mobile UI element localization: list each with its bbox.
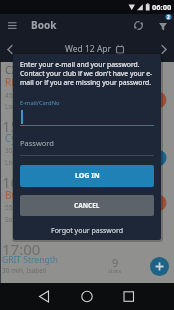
button[interactable] [124,283,151,310]
staticText: Louise [5,102,25,111]
staticText: Password [20,138,54,148]
staticText: Wed 12 Apr [65,43,112,55]
staticText: Forgot your password [51,226,124,236]
staticText: Cycle 30 [5,131,44,145]
staticText: 55 min, Eva [5,203,40,212]
staticText: CANCEL [74,201,100,210]
staticText: 9 [112,255,119,270]
staticText: Enter your e-mail and your password. Con… [20,60,154,87]
staticText: 45 min, Sara [5,91,43,100]
button[interactable]: LOG IN [20,165,154,187]
staticText: E-mail/CardNo [20,99,60,107]
button[interactable] [5,18,19,32]
staticText: Book [31,18,57,32]
staticText: 06:00 [152,2,172,12]
button[interactable]: Wed 12 Apr [65,43,124,55]
button[interactable] [20,104,154,126]
staticText: BODYPUMP [5,188,61,202]
button[interactable] [23,283,50,310]
staticText: Lisa [5,158,17,167]
button[interactable]: CANCEL [20,195,154,216]
button[interactable] [150,257,169,276]
staticText: 30 min, Lena [5,146,45,155]
staticText: CXWORX [5,63,47,77]
staticText: 17:00 [2,239,41,259]
staticText: 15:00 [2,116,41,136]
button[interactable] [20,138,154,156]
button[interactable] [74,283,101,310]
staticText: LOG IN [75,171,100,181]
button[interactable]: 2 [153,16,171,34]
button[interactable]: 17:00 [0,239,174,283]
staticText: 16:00 [2,172,41,192]
staticText: GRIT Strength [2,254,58,266]
staticText: Sofia [5,215,21,224]
button[interactable]: Forgot your password [20,224,154,238]
staticText: RPM 45 [5,75,41,89]
staticText: 30 min, Isabell [2,266,47,275]
staticText: slots [108,267,122,275]
button[interactable] [131,18,145,32]
staticText: 2 [167,14,170,20]
